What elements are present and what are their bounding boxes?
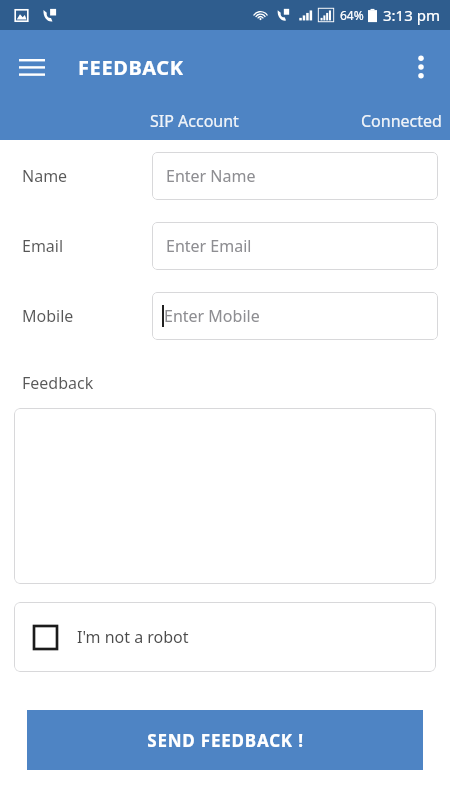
staticText: I'm not a robot (77, 626, 189, 648)
staticText: 3:13 pm (383, 5, 440, 25)
staticText: Name (22, 165, 152, 187)
button[interactable]: SEND FEEDBACK ! (27, 710, 423, 770)
button[interactable]: Enter Mobile (152, 292, 438, 340)
staticText: Email (22, 235, 152, 257)
staticText: 64% (340, 7, 364, 23)
button[interactable] (14, 408, 436, 584)
button[interactable]: Enter Email (152, 222, 438, 270)
staticText: FEEDBACK (78, 54, 184, 81)
staticText: Enter Email (166, 235, 252, 257)
staticText: Mobile (22, 305, 152, 327)
staticText: SEND FEEDBACK ! (147, 729, 304, 752)
staticText: Connected (361, 110, 442, 132)
staticText: SIP Account (150, 110, 239, 132)
button[interactable]: More options (398, 44, 444, 90)
button[interactable]: Open navigation menu (8, 44, 56, 92)
button[interactable]: Enter Name (152, 152, 438, 200)
staticText: Feedback (22, 372, 94, 394)
staticText: Enter Mobile (164, 305, 260, 327)
staticText: Enter Name (166, 165, 256, 187)
button[interactable]: I'm not a robot (14, 602, 436, 672)
